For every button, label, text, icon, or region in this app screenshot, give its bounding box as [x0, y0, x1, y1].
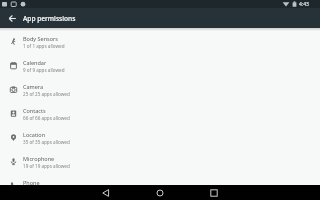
staticText: Calendar	[23, 59, 47, 66]
staticText: Body Sensors	[23, 35, 58, 42]
staticText: Microphone	[23, 155, 55, 162]
staticText: 9 of 9 apps allowed	[23, 67, 65, 73]
button[interactable]: App permissions	[0, 8, 320, 28]
staticText: 66 of 66 apps allowed	[23, 115, 70, 121]
staticText: 1 of 1 apps allowed	[23, 43, 65, 49]
staticText: 19 of 19 apps allowed	[23, 163, 70, 169]
button[interactable]	[95, 185, 119, 200]
staticText: Contacts	[23, 107, 46, 114]
button[interactable]: Contacts	[0, 105, 320, 129]
staticText: 25 of 25 apps allowed	[23, 91, 70, 97]
staticText: 35 of 35 apps allowed	[23, 139, 70, 145]
staticText: Phone	[23, 179, 40, 186]
button[interactable]: Calendar	[0, 57, 320, 81]
staticText: Location	[23, 131, 46, 138]
button[interactable]: Camera	[0, 81, 320, 105]
button[interactable]: Microphone	[0, 153, 320, 177]
button[interactable]: Body Sensors	[0, 33, 320, 57]
staticText: App permissions	[23, 14, 76, 23]
button[interactable]	[201, 185, 225, 200]
button[interactable]: Phone	[0, 177, 320, 200]
staticText: Camera	[23, 83, 44, 90]
button[interactable]	[148, 185, 172, 200]
button[interactable]: Location	[0, 129, 320, 153]
staticText: 4:43	[299, 1, 309, 8]
